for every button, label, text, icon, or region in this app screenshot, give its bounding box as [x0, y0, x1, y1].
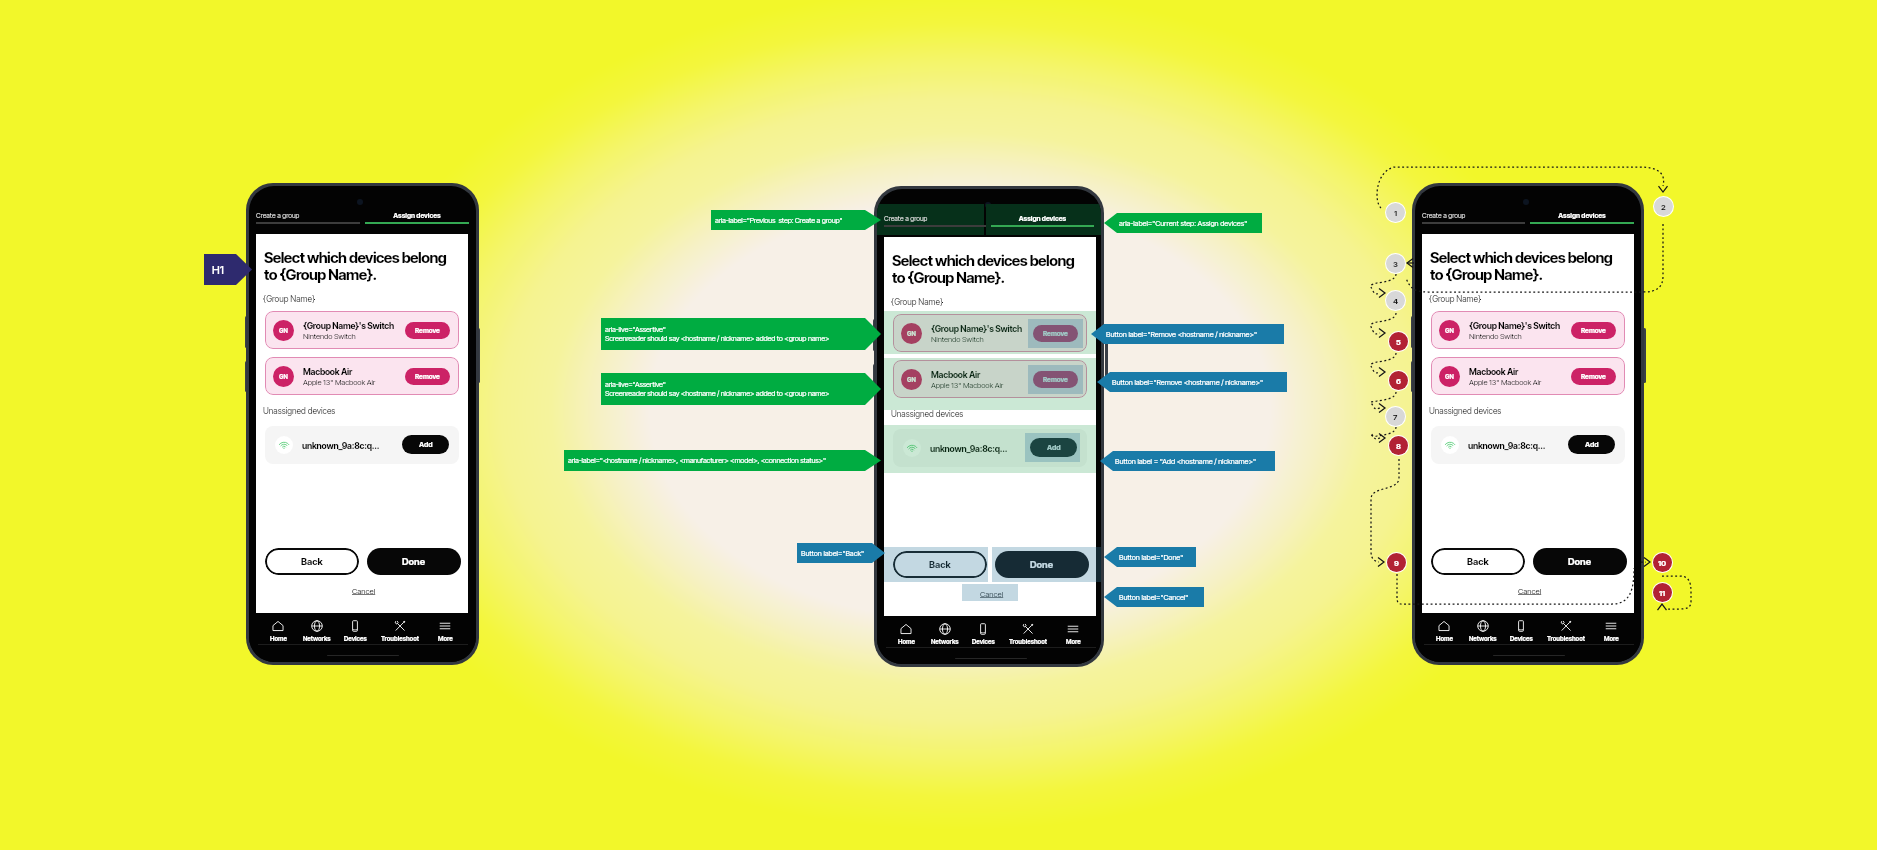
staticText: Button label="Remove <hostname / nicknam… [1112, 378, 1263, 387]
button[interactable]: Add [1030, 438, 1077, 457]
button[interactable]: unknown_9a:8c:q... [265, 426, 459, 464]
button[interactable]: unknown_9a:8c:q... [893, 429, 1087, 467]
staticText: Create a group [1422, 211, 1525, 219]
button[interactable]: Cancel [336, 582, 392, 598]
button[interactable]: Remove [405, 368, 450, 385]
staticText: Unassigned devices [1429, 406, 1502, 416]
button[interactable]: GN [893, 314, 1087, 352]
button[interactable]: More [421, 613, 469, 643]
button[interactable]: GN [1431, 311, 1625, 349]
staticText: More [438, 635, 453, 643]
staticText: Apple 13" Macbook Air [931, 381, 1004, 390]
button[interactable]: Networks [293, 613, 341, 643]
button[interactable]: More [1049, 616, 1097, 646]
button[interactable]: Networks [921, 616, 969, 646]
button[interactable]: Back [893, 551, 987, 578]
staticText: Troubleshoot [381, 635, 419, 643]
button[interactable]: More [1587, 613, 1635, 643]
button[interactable]: Create a group [884, 214, 986, 227]
button[interactable]: Home [882, 616, 930, 646]
button[interactable]: Networks [1459, 613, 1507, 643]
staticText: {Group Name} [263, 294, 316, 304]
staticText: Troubleshoot [1009, 638, 1047, 646]
button[interactable]: Done [367, 548, 461, 575]
staticText: Add [419, 440, 433, 449]
button[interactable]: Devices [1497, 613, 1545, 643]
staticText: 8 [1396, 441, 1401, 450]
staticText: Remove [415, 327, 440, 335]
staticText: Assign devices [1530, 211, 1634, 219]
staticText: GN [907, 330, 916, 337]
staticText: Back [1467, 556, 1489, 567]
staticText: Home [1436, 635, 1453, 643]
button[interactable]: Home [1420, 613, 1468, 643]
button[interactable]: Cancel [964, 585, 1020, 601]
button[interactable]: Assign devices [365, 211, 469, 224]
staticText: Button label="Remove <hostname / nicknam… [1106, 330, 1257, 339]
staticText: Select which devices belong to {Group Na… [264, 248, 464, 284]
button[interactable]: unknown_9a:8c:q... [1431, 426, 1625, 464]
staticText: Select which devices belong to {Group Na… [892, 251, 1092, 287]
staticText: 9 [1394, 558, 1399, 567]
button[interactable]: Troubleshoot [1542, 613, 1590, 643]
button[interactable]: Done [1533, 548, 1627, 575]
button[interactable]: Create a group [256, 211, 360, 224]
button[interactable]: Remove [1033, 325, 1078, 342]
button[interactable]: Create a group [1422, 211, 1525, 224]
staticText: Back [929, 559, 951, 570]
staticText: aria-label="<hostname / nickname>, <manu… [568, 456, 826, 465]
staticText: Screenreader should say <hostname / nick… [605, 389, 830, 398]
button[interactable]: Assign devices [1530, 211, 1634, 224]
staticText: More [1604, 635, 1619, 643]
staticText: Done [1568, 556, 1592, 567]
button[interactable]: Troubleshoot [1004, 616, 1052, 646]
button[interactable]: GN [265, 311, 459, 349]
button[interactable]: Remove [405, 322, 450, 339]
staticText: Networks [931, 638, 959, 646]
button[interactable]: GN [1431, 357, 1625, 395]
button[interactable]: Remove [1033, 371, 1078, 388]
staticText: Add [1047, 443, 1061, 452]
button[interactable]: Back [265, 548, 359, 575]
staticText: Screenreader should say <hostname / nick… [605, 334, 830, 343]
staticText: Macbook Air [1469, 366, 1519, 377]
staticText: Assign devices [991, 214, 1094, 222]
button[interactable]: Assign devices [991, 214, 1094, 227]
button[interactable]: GN [265, 357, 459, 395]
button[interactable]: Devices [959, 616, 1007, 646]
staticText: Remove [1043, 330, 1068, 338]
button[interactable]: Add [402, 435, 449, 454]
staticText: Cancel [352, 586, 376, 595]
staticText: aria-live="Assertive" [605, 325, 666, 334]
staticText: Networks [303, 635, 331, 643]
staticText: Home [270, 635, 287, 643]
staticText: Devices [344, 635, 367, 643]
button[interactable]: Home [254, 613, 302, 643]
staticText: Create a group [884, 214, 986, 222]
staticText: Button label = "Add <hostname / nickname… [1115, 457, 1256, 466]
button[interactable]: Cancel [1502, 582, 1558, 598]
button[interactable]: Devices [331, 613, 379, 643]
staticText: aria-live="Assertive" [605, 380, 666, 389]
staticText: Troubleshoot [1547, 635, 1585, 643]
button[interactable]: Back [1431, 548, 1525, 575]
staticText: unknown_9a:8c:q... [302, 440, 380, 451]
staticText: 1 [1394, 208, 1398, 217]
button[interactable]: Troubleshoot [376, 613, 424, 643]
staticText: Networks [1469, 635, 1497, 643]
staticText: GN [1445, 373, 1454, 380]
staticText: GN [279, 327, 288, 334]
staticText: Done [402, 556, 426, 567]
staticText: {Group Name}'s Switch [303, 320, 395, 331]
button[interactable]: Remove [1571, 368, 1616, 385]
staticText: Unassigned devices [263, 406, 336, 416]
button[interactable]: Remove [1571, 322, 1616, 339]
staticText: Nintendo Switch [1469, 332, 1522, 341]
staticText: 11 [1659, 588, 1666, 597]
staticText: 3 [1393, 259, 1398, 268]
button[interactable]: Add [1568, 435, 1615, 454]
button[interactable]: GN [893, 360, 1087, 398]
button[interactable]: Done [995, 551, 1089, 578]
staticText: 2 [1661, 202, 1666, 211]
staticText: {Group Name} [891, 297, 944, 307]
